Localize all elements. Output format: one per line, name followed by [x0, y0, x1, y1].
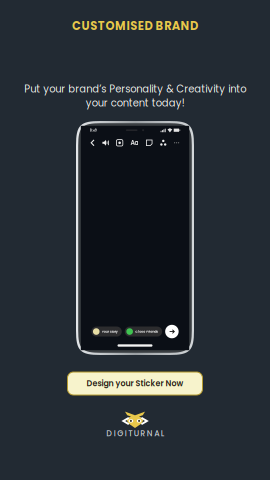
- button[interactable]: Design your Sticker Now: [67, 372, 202, 395]
- staticText: Put your brand’s Personality & Creativit…: [24, 82, 246, 110]
- button[interactable]: Close Friends: [125, 327, 162, 337]
- button[interactable]: Send: [165, 325, 179, 338]
- staticText: 8:49: [90, 128, 97, 133]
- staticText: CUSTOMISED BRAND: [72, 18, 198, 34]
- staticText: DIGITURNAL: [106, 428, 164, 439]
- button[interactable]: Your Story: [91, 327, 122, 337]
- staticText: Your Story: [102, 329, 118, 334]
- staticText: Aa: [130, 138, 138, 147]
- staticText: Close Friends: [135, 329, 158, 334]
- staticText: Design your Sticker Now: [86, 378, 183, 389]
